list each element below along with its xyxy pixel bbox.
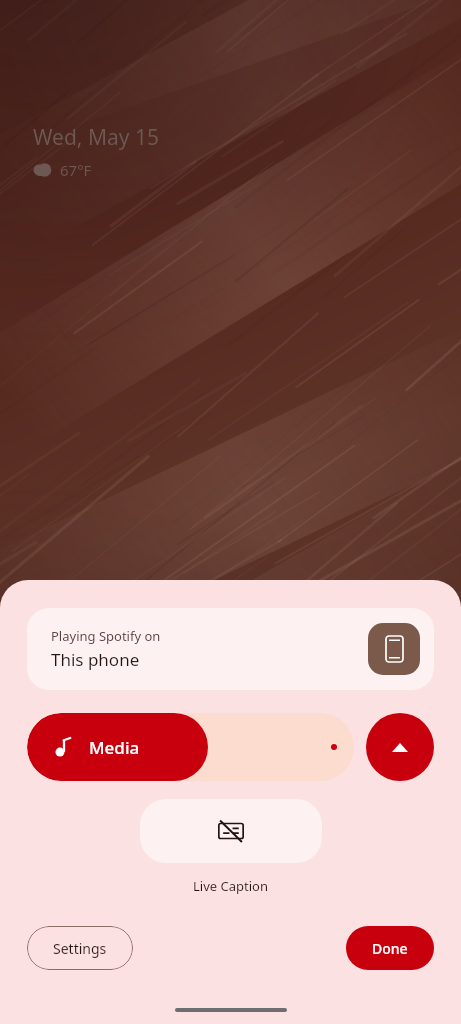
staticText: Playing Spotify on: [51, 627, 161, 645]
button[interactable]: Media: [27, 713, 354, 781]
staticText: Media: [89, 736, 140, 759]
staticText: Done: [372, 939, 408, 958]
staticText: Settings: [53, 939, 107, 958]
staticText: This phone: [51, 648, 140, 671]
button[interactable]: Output device: this phone: [368, 623, 420, 675]
button[interactable]: Playing Spotify on: [27, 608, 434, 690]
button[interactable]: Done: [346, 926, 434, 970]
staticText: Live Caption: [193, 877, 268, 895]
staticText: Wed, May 15: [33, 123, 159, 152]
staticText: 67°F: [60, 160, 92, 180]
button[interactable]: Settings: [27, 926, 133, 970]
button[interactable]: Live Caption off: [140, 799, 322, 863]
button[interactable]: Expand volume controls: [366, 713, 434, 781]
